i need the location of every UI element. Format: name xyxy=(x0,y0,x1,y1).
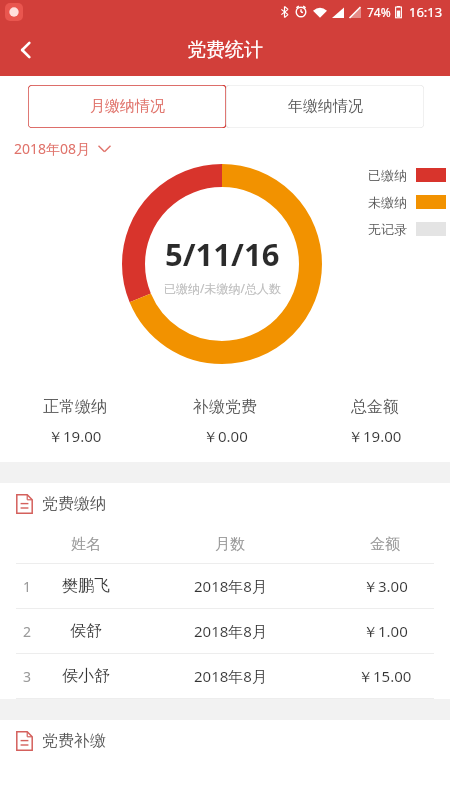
staticText: 5/11/16 xyxy=(165,233,280,275)
staticText: ￥1.00 xyxy=(363,621,408,641)
staticText: 党费统计 xyxy=(187,38,263,62)
staticText: 已缴纳 xyxy=(368,167,407,183)
staticText: 年缴纳情况 xyxy=(288,97,363,116)
staticText: 2018年8月 xyxy=(194,576,267,596)
staticText: 1 xyxy=(23,577,32,596)
button[interactable]: Back xyxy=(0,24,52,76)
staticText: ￥15.00 xyxy=(358,666,412,686)
staticText: 党费补缴 xyxy=(42,731,106,751)
staticText: 无记录 xyxy=(368,221,407,237)
staticText: ￥0.00 xyxy=(203,426,248,446)
staticText: 姓名 xyxy=(71,535,101,554)
button[interactable]: 2018年08月 xyxy=(14,136,111,160)
staticText: ￥19.00 xyxy=(348,426,402,446)
staticText: 侯舒 xyxy=(70,621,102,641)
staticText: 3 xyxy=(23,667,32,686)
button[interactable]: 党费缴纳 xyxy=(16,483,450,525)
staticText: 金额 xyxy=(370,535,400,554)
staticText: 2018年8月 xyxy=(194,621,267,641)
staticText: 总金额 xyxy=(351,397,399,417)
staticText: 16:13 xyxy=(409,3,443,21)
button[interactable]: 月缴纳情况 xyxy=(28,85,226,128)
staticText: 月缴纳情况 xyxy=(90,97,165,116)
staticText: 2 xyxy=(23,622,32,641)
staticText: 党费缴纳 xyxy=(42,494,106,514)
button[interactable]: 2 xyxy=(0,609,450,654)
staticText: 樊鹏飞 xyxy=(62,576,110,596)
button[interactable]: 年缴纳情况 xyxy=(226,85,424,128)
staticText: 2018年08月 xyxy=(14,139,91,158)
staticText: 2018年8月 xyxy=(194,666,267,686)
button[interactable]: 党费补缴 xyxy=(16,720,450,762)
staticText: 侯小舒 xyxy=(62,666,110,686)
staticText: 正常缴纳 xyxy=(43,397,107,417)
staticText: 74% xyxy=(367,4,391,20)
staticText: ￥3.00 xyxy=(363,576,408,596)
staticText: 月数 xyxy=(215,535,245,554)
staticText: 补缴党费 xyxy=(193,397,257,417)
button[interactable]: 3 xyxy=(0,654,450,699)
staticText: ￥19.00 xyxy=(48,426,102,446)
staticText: 已缴纳/未缴纳/总人数 xyxy=(164,280,281,296)
staticText: 未缴纳 xyxy=(368,194,407,210)
button[interactable]: 1 xyxy=(0,564,450,609)
